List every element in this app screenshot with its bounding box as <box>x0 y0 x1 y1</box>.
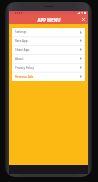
button[interactable]: Rate App <box>12 36 85 45</box>
button[interactable]: Settings <box>12 28 85 36</box>
staticText: Rate App <box>15 39 28 43</box>
staticText: Remove Ads <box>15 75 34 79</box>
staticText: Privacy Policy <box>15 66 34 70</box>
button[interactable]: About <box>12 54 85 63</box>
button[interactable]: Remove Ads <box>12 72 85 81</box>
button[interactable]: Share App <box>12 45 85 54</box>
staticText: APP MENU <box>37 17 61 23</box>
staticText: About <box>15 57 24 61</box>
button[interactable]: Close menu <box>79 15 87 23</box>
button[interactable]: Privacy Policy <box>12 63 85 72</box>
staticText: Share App <box>15 48 30 52</box>
staticText: Settings <box>15 30 27 34</box>
